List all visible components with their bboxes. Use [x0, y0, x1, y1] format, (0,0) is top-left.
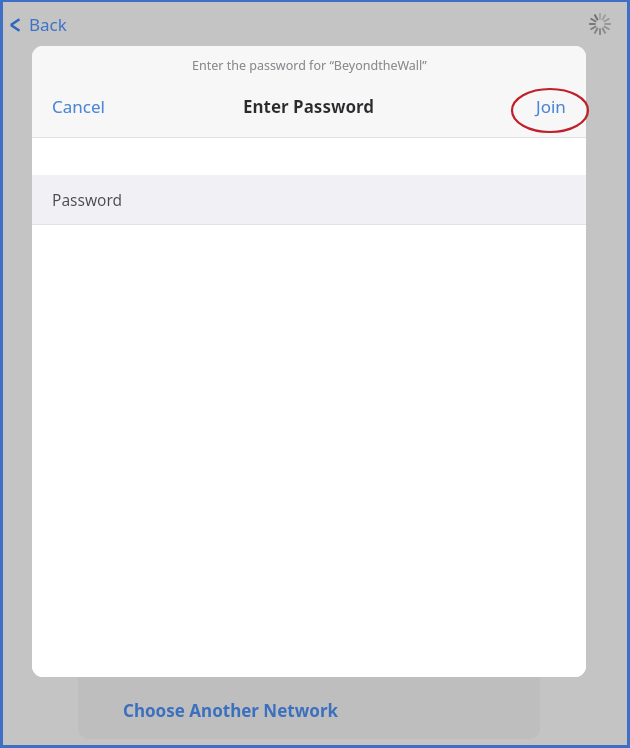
button[interactable]: Join	[524, 87, 578, 126]
staticText: Back	[29, 13, 67, 36]
button[interactable]: Password	[32, 175, 586, 224]
other: Loading	[587, 11, 613, 37]
button[interactable]: Cancel	[40, 87, 117, 126]
staticText: Enter the password for “BeyondtheWall”	[192, 57, 427, 74]
button[interactable]: Choose Another Network	[78, 654, 540, 739]
staticText: Join	[536, 95, 566, 118]
staticText: Cancel	[52, 95, 105, 118]
staticText: Enter Password	[243, 95, 375, 118]
staticText: Password	[52, 189, 123, 210]
button[interactable]: Back	[3, 7, 79, 42]
staticText: Choose Another Network	[123, 699, 339, 722]
